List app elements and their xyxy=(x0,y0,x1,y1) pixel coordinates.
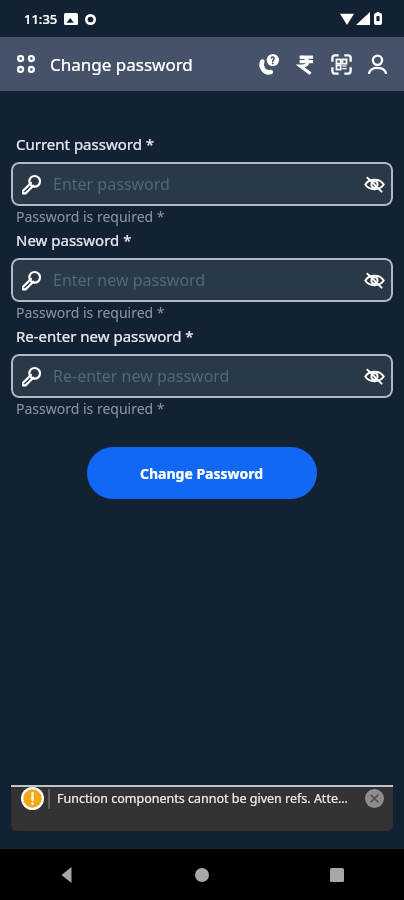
button[interactable]: Dismiss xyxy=(365,789,384,808)
staticText: Change Password xyxy=(140,464,264,483)
button[interactable]: Payments xyxy=(287,46,323,82)
staticText: Re-enter new password xyxy=(53,365,230,387)
staticText: Change password xyxy=(50,53,193,76)
staticText: Password is required * xyxy=(16,303,165,322)
button[interactable]: Change Password xyxy=(87,447,317,499)
staticText: 11:35 xyxy=(24,10,58,28)
staticText: Password is required * xyxy=(16,399,165,418)
button[interactable]: Back xyxy=(43,851,91,899)
button[interactable]: Show password xyxy=(359,169,389,199)
staticText: Re-enter new password * xyxy=(16,326,194,346)
button[interactable]: Enter new password xyxy=(11,258,393,302)
staticText: Enter new password xyxy=(53,269,206,291)
staticText: New password * xyxy=(16,230,132,250)
button[interactable]: Recents xyxy=(313,851,361,899)
button[interactable]: Re-enter new password xyxy=(11,354,393,398)
staticText: Current password * xyxy=(16,134,155,154)
button[interactable]: Support call xyxy=(251,46,287,82)
button[interactable]: Profile xyxy=(359,46,395,82)
button[interactable]: Menu xyxy=(9,47,43,81)
button[interactable]: Scan QR xyxy=(323,46,359,82)
button[interactable]: Show password xyxy=(359,361,389,391)
button[interactable]: Show password xyxy=(359,265,389,295)
staticText: Function components cannot be given refs… xyxy=(57,790,359,807)
staticText: Password is required * xyxy=(16,207,165,226)
button[interactable]: Enter password xyxy=(11,162,393,206)
button[interactable]: Home xyxy=(178,851,226,899)
staticText: Enter password xyxy=(53,173,170,195)
